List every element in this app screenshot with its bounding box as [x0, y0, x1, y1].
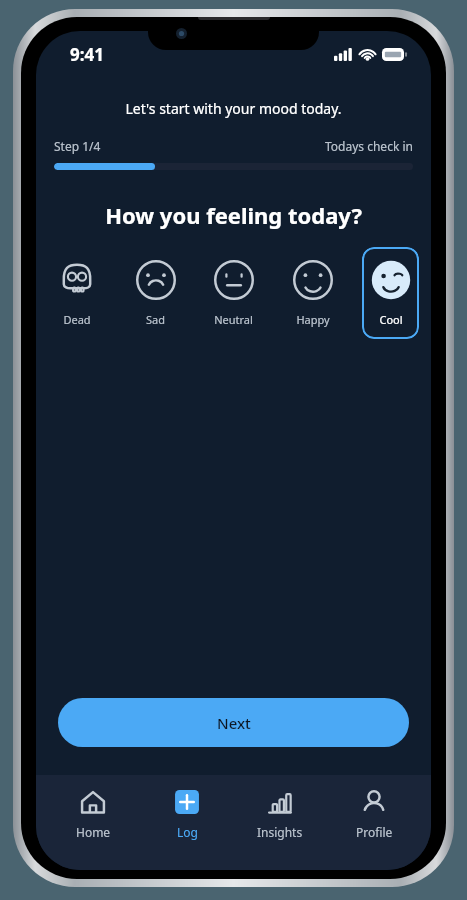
- button[interactable]: Home: [56, 789, 130, 840]
- staticText: Todays check in: [325, 138, 413, 154]
- button[interactable]: Dead: [48, 247, 105, 339]
- staticText: Log: [177, 824, 198, 840]
- staticText: Profile: [356, 824, 393, 840]
- button[interactable]: Next: [58, 698, 409, 747]
- staticText: Home: [76, 824, 111, 840]
- button[interactable]: Neutral: [205, 247, 262, 339]
- button[interactable]: Cool: [362, 247, 419, 339]
- staticText: How you feeling today?: [36, 200, 431, 230]
- staticText: Next: [217, 713, 251, 733]
- button[interactable]: Happy: [284, 247, 341, 339]
- staticText: Happy: [296, 312, 330, 327]
- staticText: Step 1/4: [54, 138, 101, 154]
- button[interactable]: Sad: [127, 247, 184, 339]
- button[interactable]: Log: [150, 789, 224, 840]
- staticText: Neutral: [214, 312, 253, 327]
- staticText: Dead: [63, 312, 91, 327]
- staticText: Cool: [379, 312, 403, 327]
- button[interactable]: Insights: [243, 789, 317, 840]
- staticText: Let's start with your mood today.: [36, 99, 431, 118]
- button[interactable]: Profile: [337, 789, 411, 840]
- staticText: 9:41: [70, 43, 104, 66]
- staticText: Sad: [146, 312, 165, 327]
- staticText: Insights: [257, 824, 303, 840]
